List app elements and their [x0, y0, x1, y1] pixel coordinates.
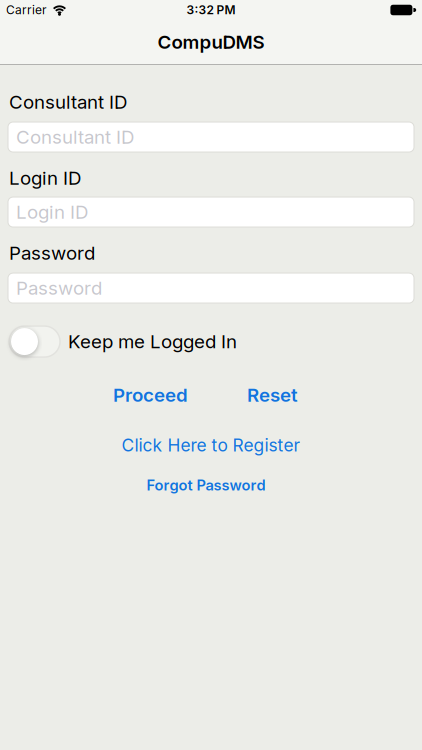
staticText: Carrier: [6, 3, 47, 17]
button[interactable]: Click Here to Register: [121, 435, 300, 455]
staticText: Password: [9, 242, 95, 264]
staticText: Consultant ID: [16, 126, 134, 148]
staticText: 3:32 PM: [186, 3, 235, 17]
button[interactable]: Proceed: [113, 384, 188, 406]
staticText: CompuDMS: [157, 31, 264, 53]
button[interactable]: Keep me Logged In: [9, 326, 60, 357]
staticText: Password: [16, 277, 102, 299]
staticText: Forgot Password: [146, 476, 265, 494]
button[interactable]: Forgot Password: [146, 476, 265, 494]
staticText: Keep me Logged In: [68, 331, 237, 353]
staticText: Login ID: [16, 201, 88, 223]
staticText: Login ID: [9, 167, 81, 189]
staticText: Click Here to Register: [121, 435, 300, 455]
staticText: Reset: [247, 384, 298, 406]
staticText: Proceed: [113, 384, 188, 406]
button[interactable]: Reset: [247, 384, 298, 406]
staticText: Consultant ID: [9, 91, 127, 113]
